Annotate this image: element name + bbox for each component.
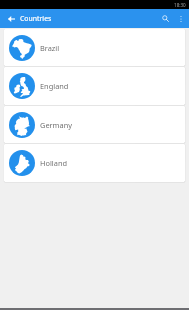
staticText: Countries [20, 14, 52, 23]
button[interactable]: Brazil [4, 29, 185, 66]
staticText: Germany [40, 120, 72, 130]
button[interactable]: Holland [4, 144, 185, 182]
staticText: 18:30 [174, 2, 186, 8]
button[interactable]: Germany [4, 106, 185, 143]
staticText: Brazil [40, 43, 60, 53]
button[interactable]: Search [159, 9, 172, 28]
staticText: England [40, 81, 69, 91]
button[interactable]: More options [172, 9, 189, 28]
button[interactable]: England [4, 67, 185, 105]
button[interactable]: Back [0, 9, 20, 28]
staticText: Holland [40, 158, 68, 168]
